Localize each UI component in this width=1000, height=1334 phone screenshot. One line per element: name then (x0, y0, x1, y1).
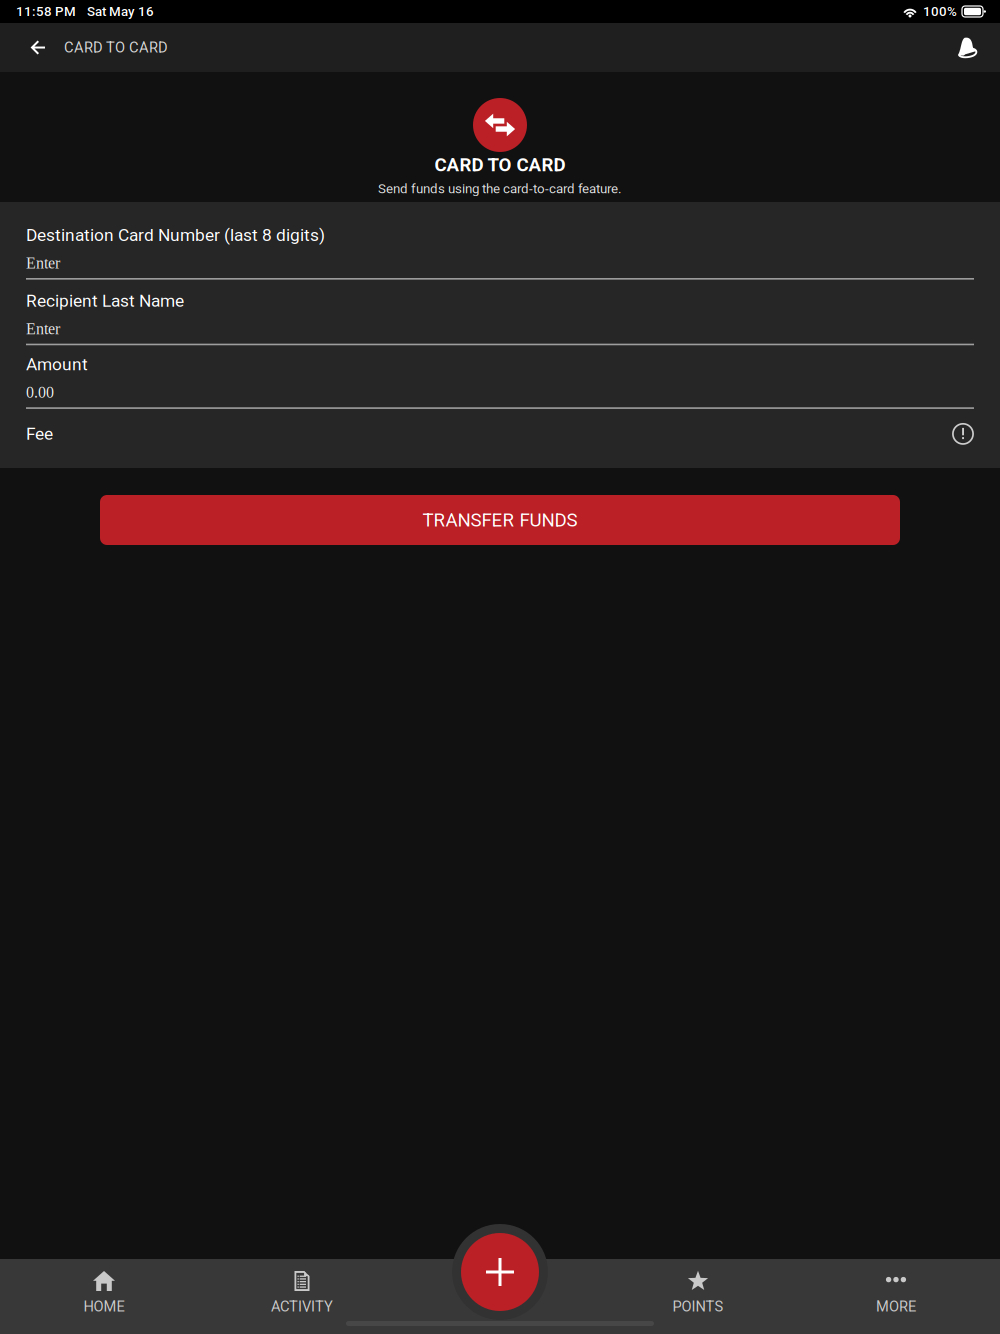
button[interactable]: Back (0, 23, 77, 72)
button[interactable]: TRANSFER FUNDS (100, 495, 900, 545)
staticText: TRANSFER FUNDS (422, 509, 577, 531)
staticText: POINTS (672, 1298, 723, 1315)
staticText: CARD TO CARD (434, 154, 565, 176)
staticText: ACTIVITY (271, 1298, 333, 1315)
button[interactable]: HOME (5, 1259, 203, 1334)
button[interactable]: Notifications (935, 23, 1000, 72)
staticText: 0.00 (26, 384, 54, 401)
staticText: MORE (876, 1298, 916, 1315)
staticText: Destination Card Number (last 8 digits) (26, 225, 325, 245)
staticText: 11:58 PM (16, 4, 76, 19)
staticText: Send funds using the card-to-card featur… (378, 181, 622, 196)
staticText: Sat May 16 (87, 4, 154, 19)
staticText: CARD TO CARD (64, 39, 168, 56)
staticText: Amount (26, 354, 88, 375)
button[interactable]: Add (452, 1224, 548, 1320)
button[interactable]: Fee information (952, 423, 974, 445)
staticText: Recipient Last Name (26, 291, 184, 311)
staticText: HOME (83, 1298, 124, 1315)
staticText: Enter (26, 254, 60, 272)
button[interactable]: MORE (797, 1259, 995, 1334)
button[interactable]: ACTIVITY (203, 1259, 401, 1334)
staticText: Fee (26, 424, 53, 444)
staticText: 100% (923, 4, 957, 19)
staticText: Enter (26, 320, 60, 338)
button[interactable]: POINTS (599, 1259, 797, 1334)
